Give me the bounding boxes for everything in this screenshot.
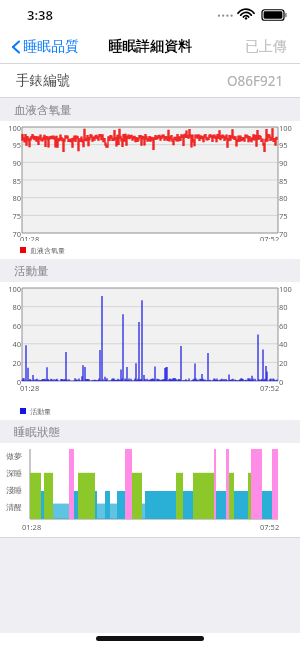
staticText: 80 [279,193,299,203]
staticText: 85 [1,176,21,186]
other: Back [11,39,21,55]
staticText: 95 [279,140,299,150]
button[interactable]: Back [8,34,82,60]
staticText: O86F921 [227,72,284,90]
staticText: 0 [1,377,21,387]
staticText: 100 [1,284,21,294]
staticText: 01:28 [22,522,42,532]
staticText: 100 [279,123,299,133]
staticText: 做夢 [6,451,22,461]
staticText: 85 [279,176,299,186]
staticText: 3:38 [27,6,53,24]
staticText: 60 [279,321,299,331]
staticText: 75 [1,211,21,221]
staticText: 80 [1,193,21,203]
staticText: 07:52 [260,383,280,393]
staticText: 01:28 [20,234,40,241]
staticText: 血液含氧量 [14,103,72,117]
staticText: 40 [279,339,299,349]
staticText: 20 [279,358,299,368]
staticText: 血液含氧量 [30,246,65,255]
staticText: 睡眠狀態 [14,425,60,439]
staticText: 100 [279,284,299,294]
staticText: 清醒 [6,502,22,512]
staticText: 70 [279,229,299,239]
staticText: 90 [279,158,299,168]
staticText: 40 [1,339,21,349]
staticText: 淺睡 [6,485,22,495]
staticText: 100 [1,123,21,133]
button[interactable]: 已上傳 [245,38,287,56]
button[interactable]: 手錶編號 [0,64,300,97]
staticText: 07:52 [260,234,280,241]
staticText: 75 [279,211,299,221]
staticText: 60 [1,321,21,331]
staticText: 95 [1,140,21,150]
staticText: 70 [1,229,21,239]
staticText: 80 [1,302,21,312]
staticText: 深睡 [6,468,22,478]
staticText: 活動量 [14,264,49,278]
staticText: 0 [279,377,299,387]
staticText: 07:52 [260,522,280,532]
staticText: 01:28 [20,383,40,393]
staticText: 手錶編號 [16,72,70,89]
staticText: 睡眠品質 [23,38,79,56]
staticText: 20 [1,358,21,368]
staticText: 80 [279,302,299,312]
staticText: 活動量 [30,407,51,416]
staticText: 90 [1,158,21,168]
staticText: 睡眠詳細資料 [108,38,192,56]
